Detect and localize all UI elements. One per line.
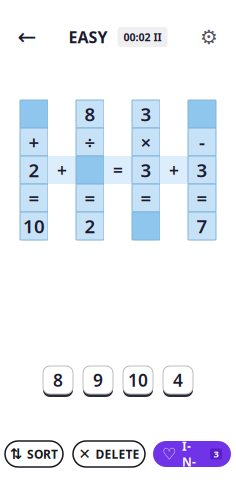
staticText: ♡ xyxy=(162,445,176,463)
button[interactable]: 4 xyxy=(163,366,193,397)
button[interactable]: ⇅ xyxy=(5,441,63,467)
button[interactable]: 8 xyxy=(43,366,73,397)
button[interactable]: 10 xyxy=(123,366,153,397)
button[interactable]: ✕ xyxy=(73,441,145,467)
staticText: = xyxy=(84,186,95,210)
button[interactable]: ♡ xyxy=(153,441,231,467)
staticText: = xyxy=(113,158,123,181)
staticText: 00:02 xyxy=(123,30,150,44)
staticText: 7 xyxy=(196,214,207,238)
staticText: 2 xyxy=(84,214,95,238)
staticText: DELETE xyxy=(95,446,139,462)
staticText: II xyxy=(153,30,161,44)
staticText: 3 xyxy=(140,102,151,126)
staticText: 8 xyxy=(53,368,63,391)
staticText: ⚙ xyxy=(200,26,218,48)
staticText: 8 xyxy=(84,102,95,126)
button[interactable]: 9 xyxy=(83,366,113,397)
staticText: + xyxy=(28,130,39,154)
button[interactable]: Settings xyxy=(192,20,226,54)
staticText: = xyxy=(196,186,207,210)
staticText: ⇅ xyxy=(10,446,22,462)
staticText: + xyxy=(57,158,67,181)
staticText: = xyxy=(28,186,39,210)
staticText: × xyxy=(140,130,151,154)
staticText: + xyxy=(169,158,179,181)
staticText: ✕ xyxy=(78,446,90,462)
staticText: 3 xyxy=(196,158,207,182)
staticText: 2 xyxy=(28,158,39,182)
staticText: EASY xyxy=(68,26,107,48)
staticText: 3 xyxy=(140,158,151,182)
staticText: 9 xyxy=(93,368,103,391)
staticText: 10 xyxy=(128,368,148,391)
staticText: HINT xyxy=(182,422,196,486)
staticText: = xyxy=(140,186,151,210)
staticText: ← xyxy=(17,24,36,50)
staticText: - xyxy=(199,130,205,154)
staticText: 4 xyxy=(173,368,183,391)
staticText: 10 xyxy=(23,214,45,238)
button[interactable]: Back xyxy=(10,20,44,54)
staticText: ÷ xyxy=(84,130,95,154)
staticText: SORT xyxy=(27,446,58,462)
staticText: 3 xyxy=(213,448,218,460)
